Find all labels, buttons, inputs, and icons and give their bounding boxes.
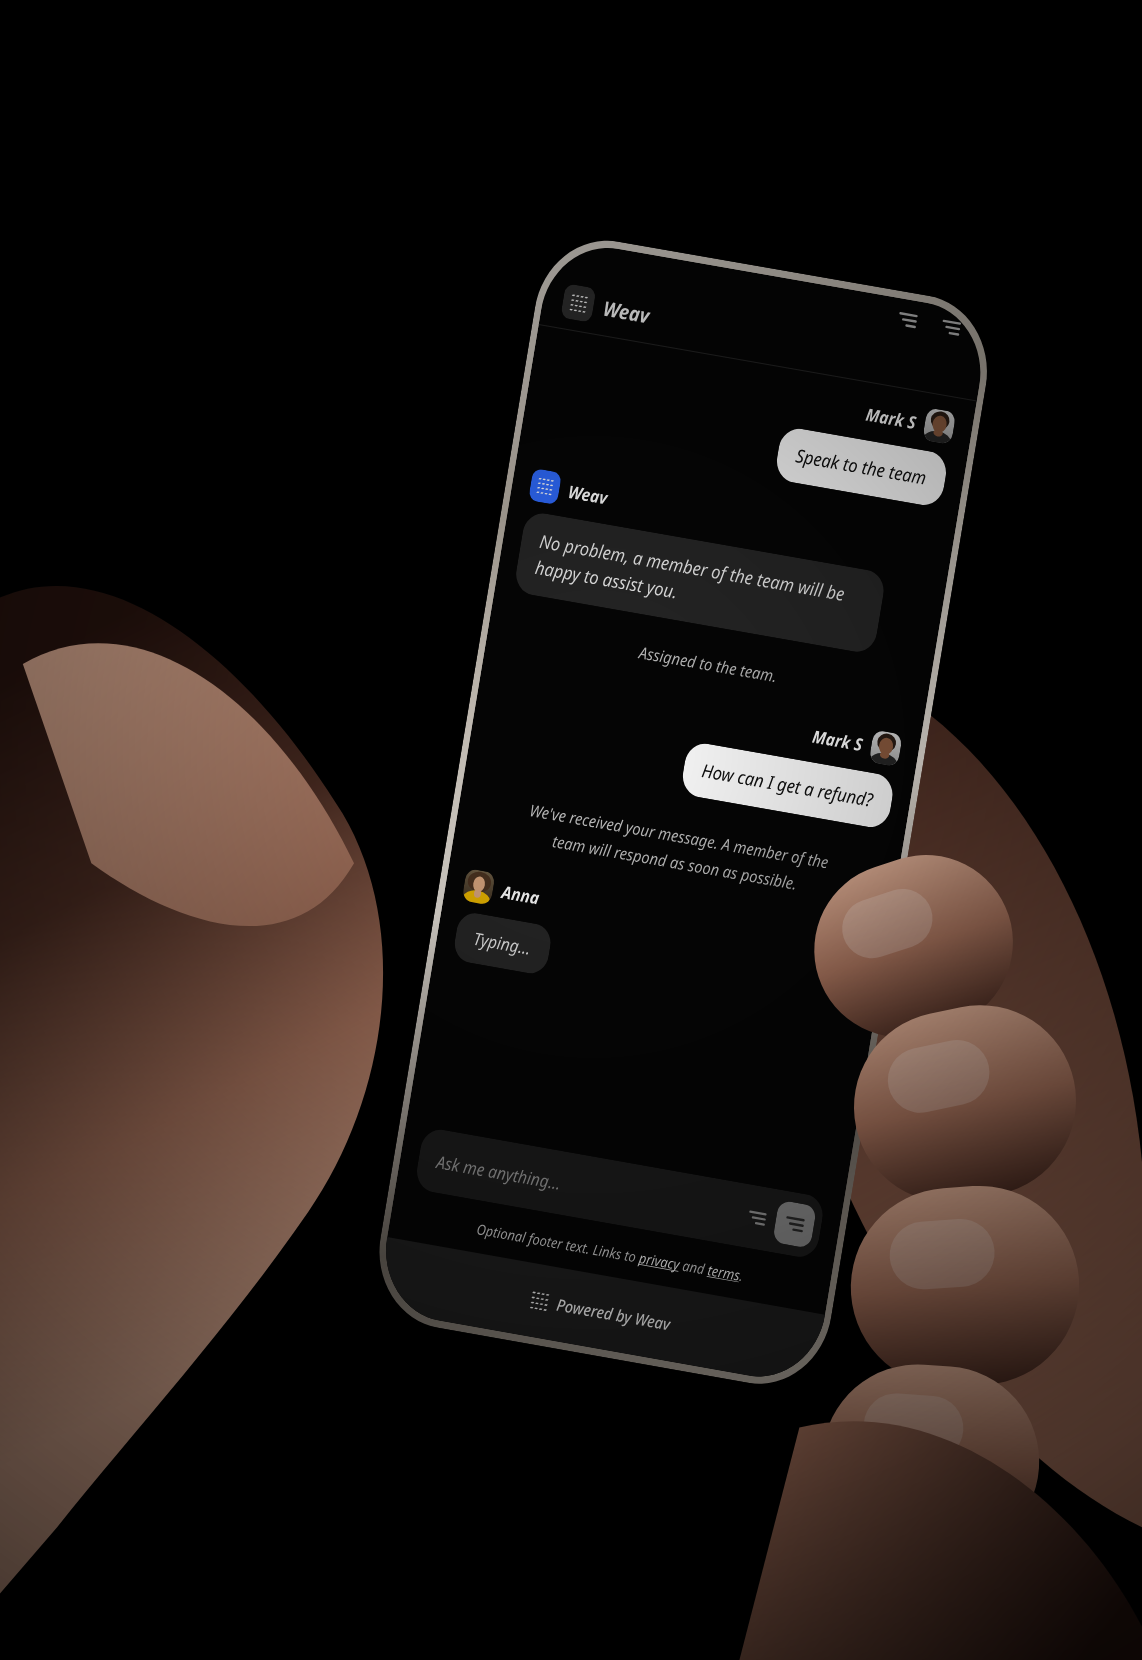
button[interactable]: Speak to the team [774, 426, 949, 508]
button[interactable]: Typing... [452, 910, 553, 976]
staticText: Weav [566, 480, 610, 510]
button[interactable]: Powered by Weav [375, 1237, 825, 1387]
button[interactable]: Mark S [495, 664, 903, 767]
button[interactable]: Mark S [549, 342, 956, 445]
button[interactable]: Ask me anything... [414, 1126, 826, 1260]
staticText: Mark S [811, 724, 865, 756]
staticText: Typing... [472, 927, 533, 960]
button[interactable]: Weav [528, 468, 935, 570]
staticText: Optional footer text. Links to privacy a… [475, 1219, 745, 1285]
button[interactable]: How can I get a refund? [679, 740, 896, 830]
staticText: Speak to the team [794, 443, 929, 491]
button[interactable]: Weav [560, 283, 984, 390]
button[interactable]: Anna [462, 868, 869, 971]
staticText: Assigned to the team. [637, 641, 779, 687]
button[interactable]: Menu [892, 303, 924, 338]
staticText: Powered by Weav [555, 1293, 672, 1335]
button[interactable]: No problem, a member of the team will be… [513, 510, 887, 655]
staticText: Ask me anything... [435, 1150, 743, 1227]
staticText: Mark S [864, 402, 918, 434]
button[interactable]: Send [772, 1200, 817, 1249]
staticText: Weav [601, 294, 652, 329]
button[interactable]: Options [935, 310, 967, 345]
staticText: How can I get a refund? [700, 758, 875, 813]
staticText: No problem, a member of the team will be… [533, 528, 866, 637]
staticText: Anna [500, 880, 542, 910]
button[interactable]: Attach [738, 1198, 775, 1237]
staticText: We've received your message. A member of… [523, 799, 830, 900]
